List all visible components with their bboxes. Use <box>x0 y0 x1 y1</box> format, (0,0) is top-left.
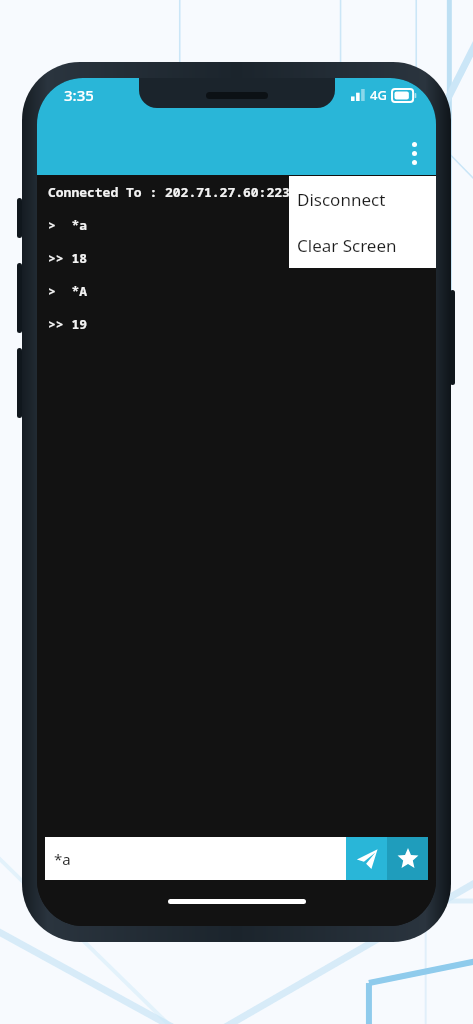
button[interactable]: Clear Screen <box>289 222 436 268</box>
staticText: 4G <box>370 86 387 104</box>
button[interactable]: Favorites <box>387 837 428 880</box>
button[interactable]: *a <box>45 837 346 880</box>
staticText: Clear Screen <box>297 234 397 257</box>
staticText: > *A <box>48 282 88 300</box>
button[interactable]: Disconnect <box>289 176 436 222</box>
staticText: *a <box>54 849 71 869</box>
staticText: >> 18 <box>48 249 88 267</box>
button[interactable]: Send <box>346 837 387 880</box>
staticText: 3:35 <box>64 85 94 105</box>
staticText: Connected To : 202.71.27.60:2232 <box>48 183 298 201</box>
staticText: >> 19 <box>48 315 88 333</box>
staticText: Disconnect <box>297 188 386 211</box>
button[interactable]: More options <box>392 131 436 175</box>
staticText: > *a <box>48 216 88 234</box>
